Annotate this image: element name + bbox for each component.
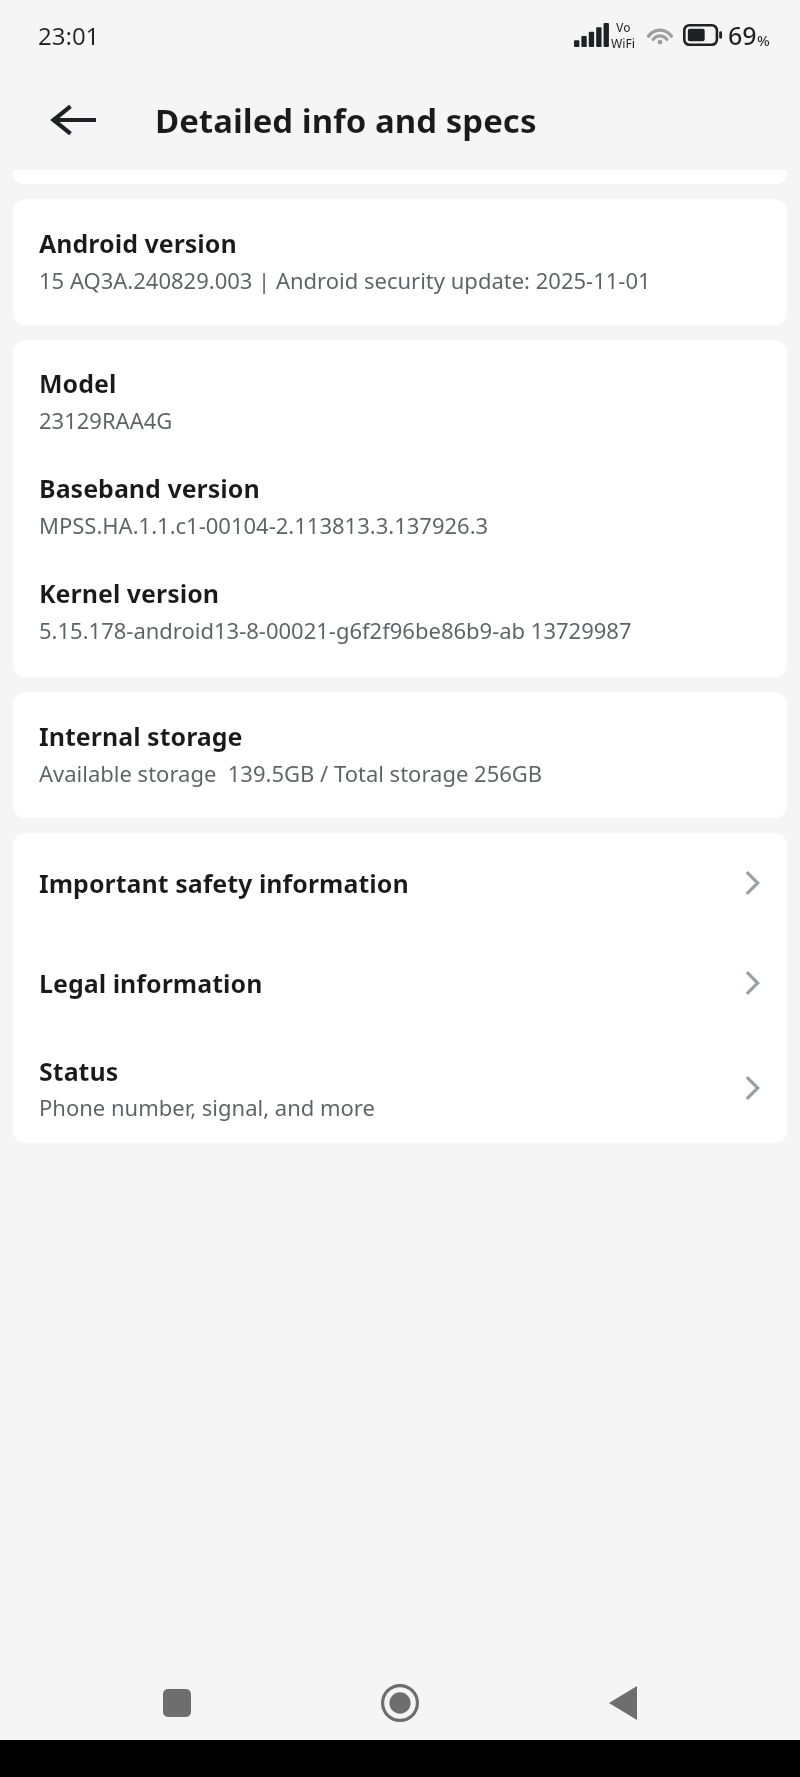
staticText: 5.15.178-android13-8-00021-g6f2f96be86b9… [39,615,632,645]
staticText: Android version [39,226,237,260]
button[interactable]: Home [369,1672,431,1734]
button[interactable]: Kernel version [13,550,787,677]
staticText: Status [39,1054,119,1088]
button[interactable]: Important safety information [13,833,787,933]
staticText: Legal information [39,966,263,1000]
staticText: 23129RAA4G [39,405,173,435]
staticText: 15 AQ3A.240829.003 | Android security up… [39,265,651,295]
button[interactable]: Back [592,1672,654,1734]
button[interactable]: Back [38,84,110,156]
staticText: Important safety information [39,866,409,900]
button[interactable]: Internal storage [13,692,787,818]
button[interactable]: Recent apps [146,1672,208,1734]
staticText: Phone number, signal, and more [39,1092,375,1122]
staticText: 69 [728,18,757,52]
staticText: 23:01 [38,19,100,52]
button[interactable]: Status [13,1033,787,1143]
button[interactable]: Model [13,340,787,445]
staticText: Vo [616,19,631,35]
button[interactable]: Android version [13,199,787,325]
staticText: % [757,30,770,50]
staticText: Baseband version [39,471,260,505]
button[interactable]: Baseband version [13,445,787,550]
staticText: Internal storage [39,719,243,753]
staticText: Available storage 139.5GB / Total storag… [39,758,543,788]
staticText: Detailed info and specs [155,98,537,143]
staticText: WiFi [611,35,636,51]
staticText: Kernel version [39,576,220,610]
button[interactable]: Legal information [13,933,787,1033]
staticText: Model [39,366,117,400]
staticText: MPSS.HA.1.1.c1-00104-2.113813.3.137926.3 [39,510,489,540]
